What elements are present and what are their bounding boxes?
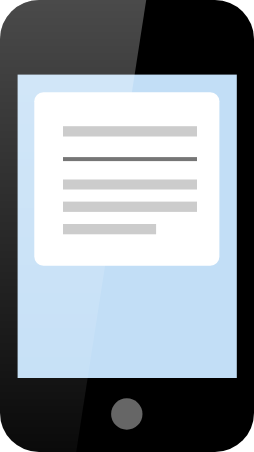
button[interactable]: Open document [34,92,219,265]
button[interactable]: Home button [111,398,142,429]
